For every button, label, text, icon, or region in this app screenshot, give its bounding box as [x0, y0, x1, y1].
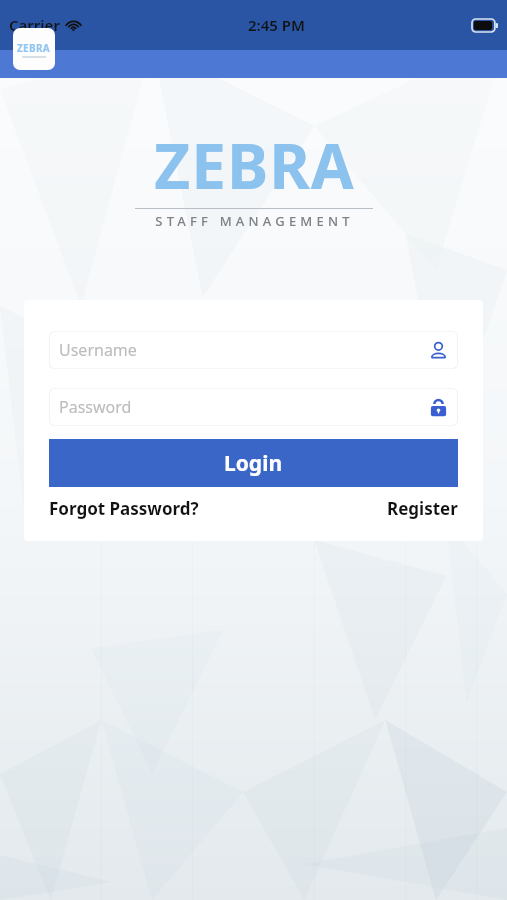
staticText: 2:45 PM — [248, 15, 305, 35]
button[interactable]: Zebra app icon — [13, 28, 55, 70]
staticText: Password — [59, 396, 132, 418]
other: Password — [429, 398, 448, 417]
staticText: ZEBRA — [17, 41, 51, 55]
button[interactable]: Login — [49, 439, 458, 487]
staticText: Carrier — [9, 15, 60, 35]
staticText: Username — [59, 339, 137, 361]
other: Username — [429, 341, 448, 360]
staticText: Forgot Password? — [49, 497, 199, 520]
button[interactable]: Forgot Password? — [49, 497, 199, 520]
button[interactable]: Username — [49, 331, 458, 369]
other: Battery — [472, 19, 498, 32]
button[interactable]: Password — [49, 388, 458, 426]
other: Wi-Fi — [66, 19, 81, 31]
staticText: STAFF MANAGEMENT — [155, 212, 354, 230]
button[interactable]: Register — [387, 497, 458, 520]
staticText: Login — [224, 449, 283, 478]
staticText: Register — [387, 497, 458, 520]
staticText: ZEBRA — [154, 123, 355, 207]
